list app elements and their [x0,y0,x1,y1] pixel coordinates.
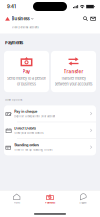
button[interactable]: Payments [33,193,67,204]
staticText: Deposit a cheque into your account [14,115,55,118]
staticText: Pay in cheque [14,109,37,114]
button[interactable]: Standing orders [4,139,96,155]
staticText: or business [17,82,36,86]
staticText: Home [14,201,20,204]
staticText: Standing orders [14,143,39,147]
staticText: between your accounts [54,82,92,86]
button[interactable]: Home [0,193,33,204]
staticText: 9:41 [7,4,16,9]
button[interactable]: Messages [89,15,97,22]
staticText: Transfer [63,69,83,74]
button[interactable]: Support [67,193,100,204]
button[interactable]: Pay [4,51,49,92]
button[interactable]: Pay in cheque [4,105,96,122]
staticText: Direct Debits [14,126,36,130]
staticText: Business [12,16,30,21]
staticText: View or set up standing orders [14,148,52,151]
staticText: Payments [45,201,55,204]
staticText: Transfer money [61,76,86,80]
button[interactable]: Business [0,13,100,33]
button[interactable]: Transfer [51,51,96,92]
button[interactable]: Direct Debits [4,122,96,139]
staticText: Payments [5,40,23,45]
staticText: Pay [22,69,30,74]
button[interactable]: Search [82,15,89,22]
staticText: Support [79,201,87,204]
staticText: Other options [5,98,22,101]
staticText: View personal accounts [12,26,39,29]
staticText: View your Direct Debits [14,131,43,135]
staticText: Send money to a person [7,76,46,80]
